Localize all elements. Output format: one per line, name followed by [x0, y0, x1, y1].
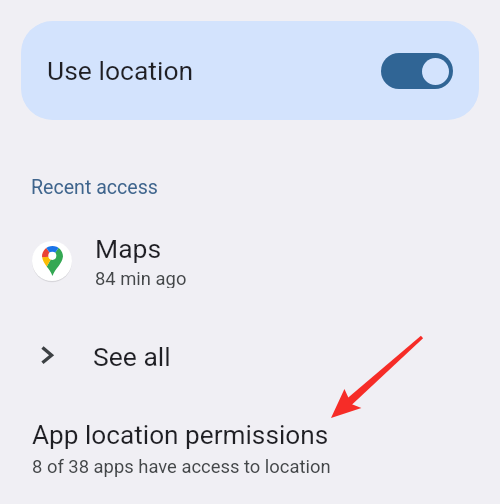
staticText: 8 of 38 apps have access to location: [32, 456, 331, 478]
staticText: Use location: [47, 55, 194, 86]
staticText: 84 min ago: [95, 268, 187, 288]
staticText: See all: [93, 341, 171, 372]
staticText: Maps: [95, 233, 162, 264]
button[interactable]: Use location: [21, 21, 479, 120]
other: Use location toggle: [381, 53, 453, 89]
button[interactable]: App location permissions: [0, 416, 500, 486]
button[interactable]: See all: [0, 334, 500, 378]
staticText: Recent access: [31, 176, 158, 199]
button[interactable]: Maps: [0, 233, 500, 288]
other: See all: [32, 336, 72, 376]
staticText: App location permissions: [32, 420, 329, 451]
